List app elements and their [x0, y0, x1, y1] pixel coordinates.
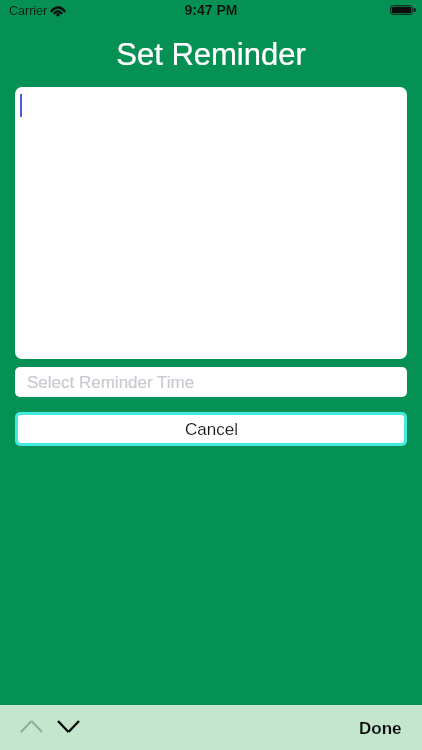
staticText: Carrier: [9, 4, 48, 18]
button[interactable]: Reminder note: [15, 87, 407, 359]
button[interactable]: Next field: [47, 706, 89, 746]
other: Wi-Fi: [50, 4, 66, 16]
other: Battery full: [390, 5, 416, 15]
button[interactable]: Select Reminder Time: [15, 367, 407, 397]
staticText: Done: [359, 719, 402, 738]
button[interactable]: Previous field: [10, 706, 52, 746]
staticText: Set Reminder: [116, 37, 306, 72]
button[interactable]: Cancel: [18, 415, 404, 443]
staticText: Cancel: [185, 420, 238, 439]
staticText: Select Reminder Time: [27, 373, 195, 392]
button[interactable]: Done: [349, 708, 411, 748]
staticText: 9:47 PM: [0, 2, 422, 18]
